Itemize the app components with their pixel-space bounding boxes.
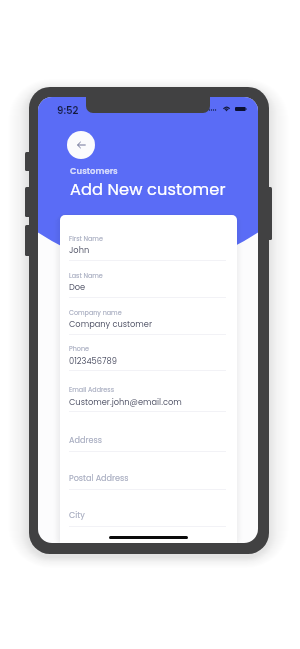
staticText: Add New customer (70, 178, 226, 201)
staticText: Customers (70, 165, 118, 177)
staticText: Phone (69, 344, 89, 353)
staticText: Company name (69, 308, 122, 317)
staticText: Doe (69, 281, 86, 293)
staticText: Last Name (69, 271, 103, 280)
staticText: John (69, 244, 90, 256)
staticText: Email Address (69, 385, 114, 394)
staticText: 0123456789 (69, 355, 117, 367)
staticText: First Name (69, 234, 103, 243)
staticText: Postal Address (69, 472, 129, 483)
staticText: 9:52 (57, 103, 79, 117)
button[interactable]: Back (67, 131, 95, 159)
staticText: City (69, 509, 85, 520)
staticText: Address (69, 434, 102, 445)
staticText: Company customer (69, 318, 152, 330)
staticText: Customer.john@email.com (69, 396, 182, 408)
